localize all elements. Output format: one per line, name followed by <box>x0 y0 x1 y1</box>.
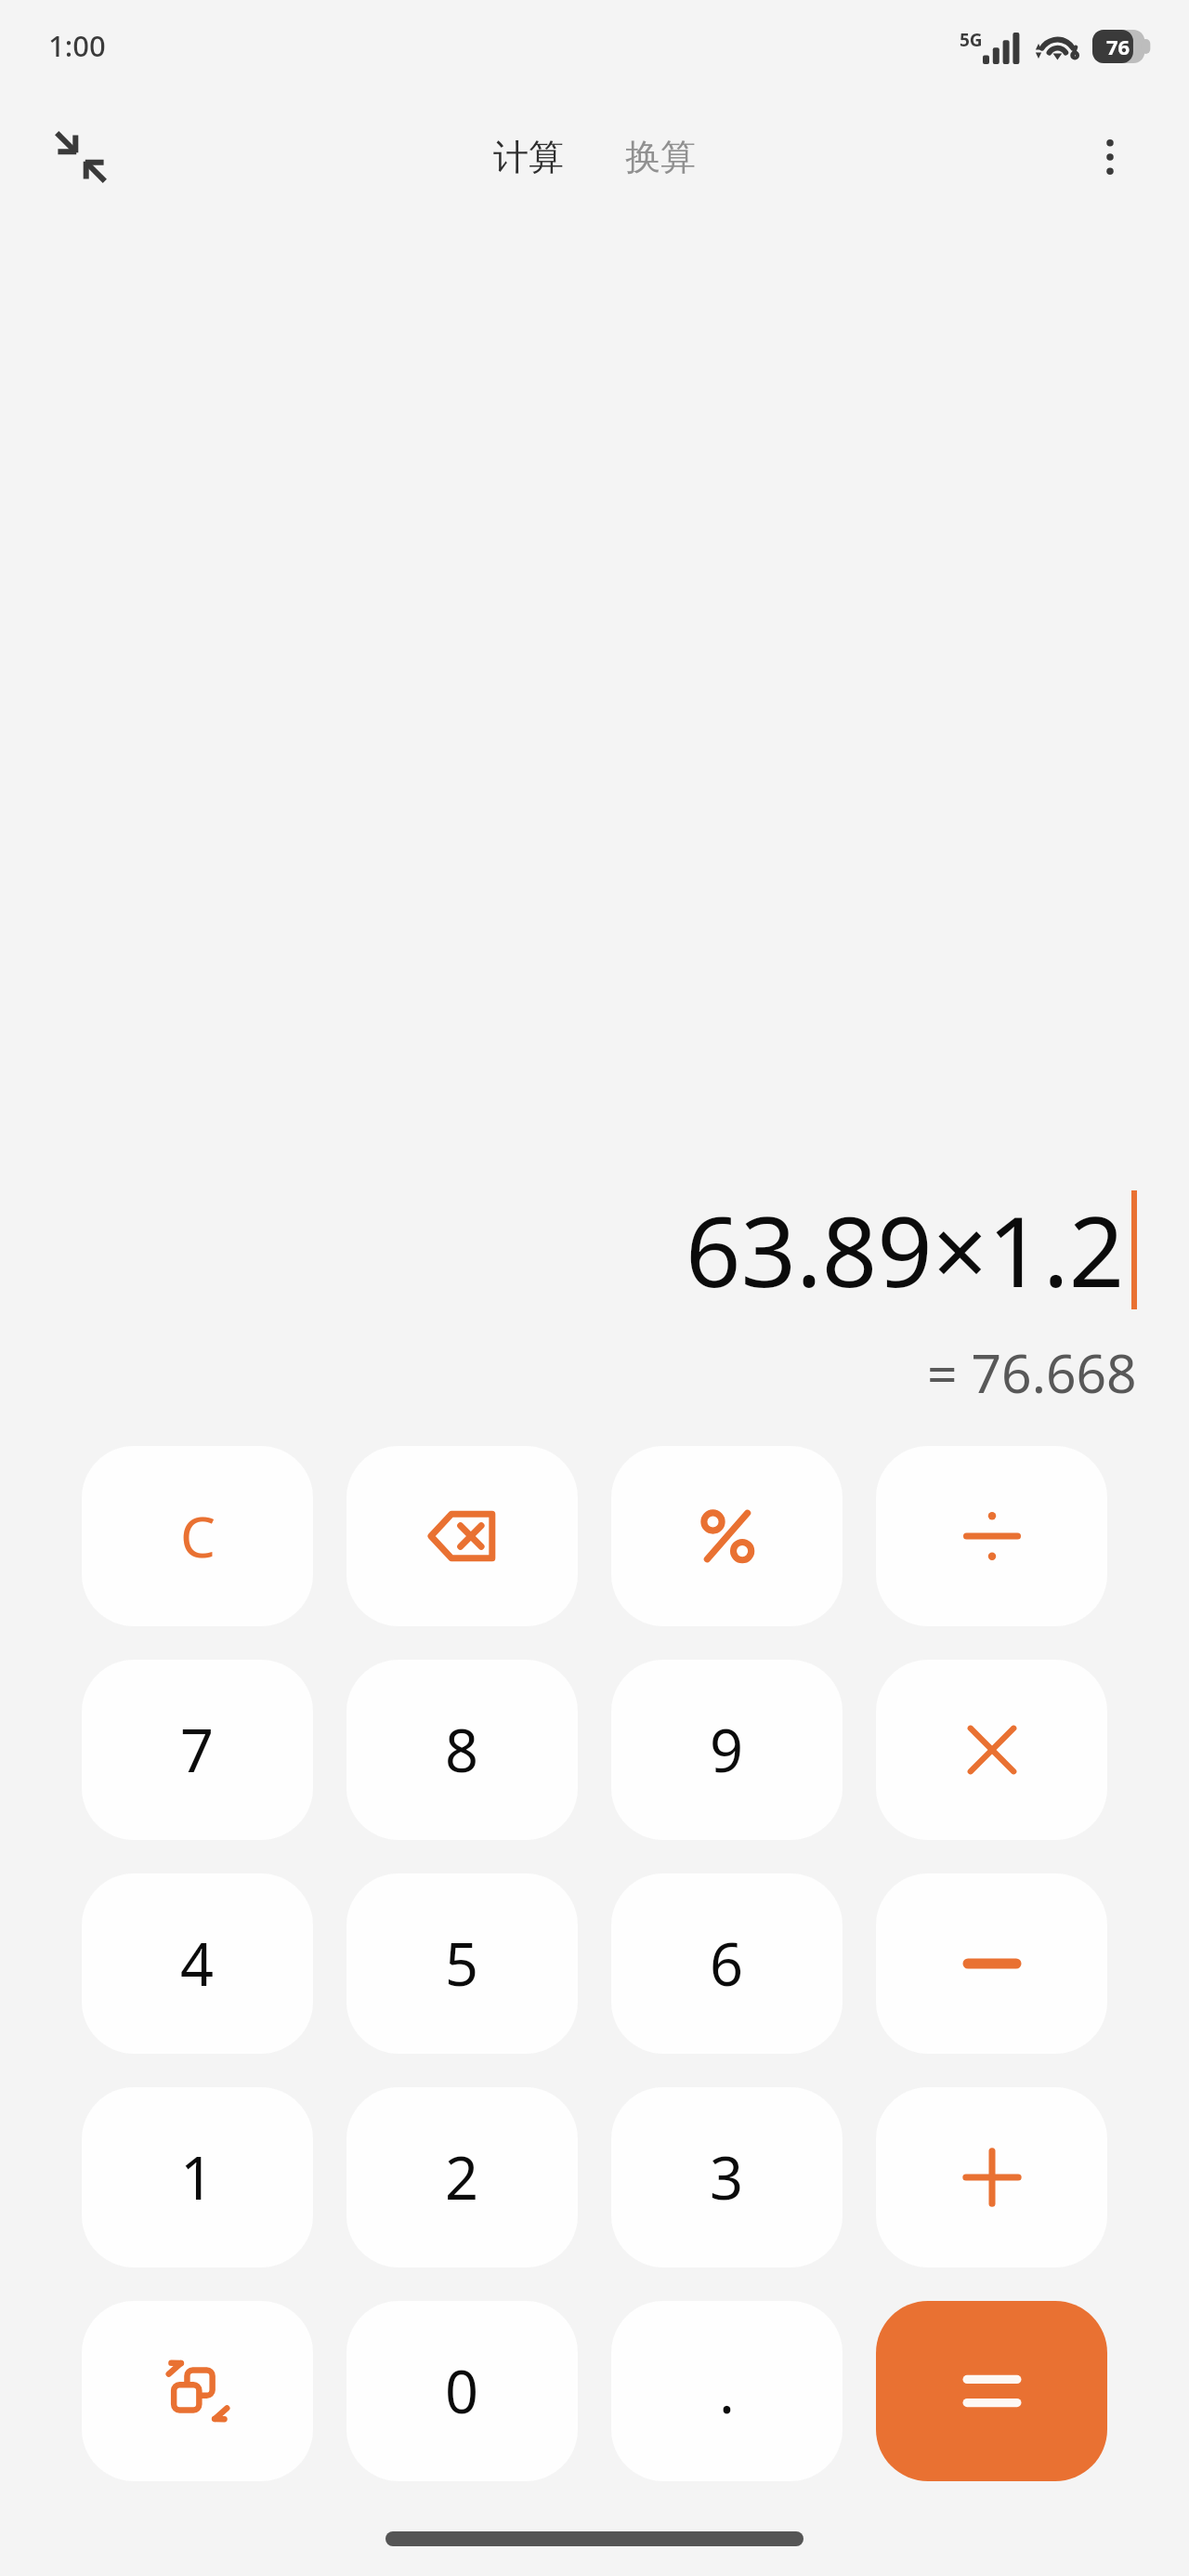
staticText: 0 <box>445 2351 479 2431</box>
button[interactable]: 3 <box>611 2087 843 2267</box>
button[interactable]: Divide <box>876 1446 1107 1626</box>
staticText: 2 <box>445 2137 479 2217</box>
button[interactable]: 0 <box>346 2301 578 2481</box>
button[interactable]: 2 <box>346 2087 578 2267</box>
button[interactable]: Plus <box>876 2087 1107 2267</box>
button[interactable]: Percent <box>611 1446 843 1626</box>
staticText: 76 <box>1106 33 1130 60</box>
staticText: . <box>719 2351 735 2431</box>
button[interactable]: Multiply <box>876 1660 1107 1840</box>
staticText: = 76.668 <box>927 1336 1137 1409</box>
staticText: 9 <box>710 1710 744 1790</box>
button[interactable]: 计算 <box>482 125 575 189</box>
staticText: C <box>180 1498 216 1574</box>
staticText: 5 <box>445 1924 479 2004</box>
staticText: 7 <box>180 1710 215 1790</box>
staticText: 6 <box>710 1924 744 2004</box>
staticText: 8 <box>445 1710 479 1790</box>
staticText: 计算 <box>493 135 564 179</box>
staticText: 63.89×1.2 <box>686 1184 1125 1316</box>
button[interactable]: Equals <box>876 2301 1107 2481</box>
button[interactable]: Collapse <box>35 112 126 203</box>
staticText: 1 <box>180 2137 215 2217</box>
staticText: 3 <box>710 2137 744 2217</box>
button[interactable]: Minus <box>876 1873 1107 2054</box>
button[interactable]: 8 <box>346 1660 578 1840</box>
button[interactable]: C <box>82 1446 313 1626</box>
staticText: 1:00 <box>48 26 106 65</box>
staticText: 换算 <box>625 135 696 179</box>
button[interactable]: 5 <box>346 1873 578 2054</box>
button[interactable]: 1 <box>82 2087 313 2267</box>
button[interactable]: 6 <box>611 1873 843 2054</box>
button[interactable]: Convert <box>82 2301 313 2481</box>
staticText: 4 <box>180 1924 215 2004</box>
button[interactable]: More options <box>1066 113 1154 201</box>
button[interactable]: 7 <box>82 1660 313 1840</box>
button[interactable]: . <box>611 2301 843 2481</box>
button[interactable]: Backspace <box>346 1446 578 1626</box>
staticText: 5G <box>960 28 983 52</box>
button[interactable]: 4 <box>82 1873 313 2054</box>
button[interactable]: 9 <box>611 1660 843 1840</box>
button[interactable]: 换算 <box>614 125 707 189</box>
